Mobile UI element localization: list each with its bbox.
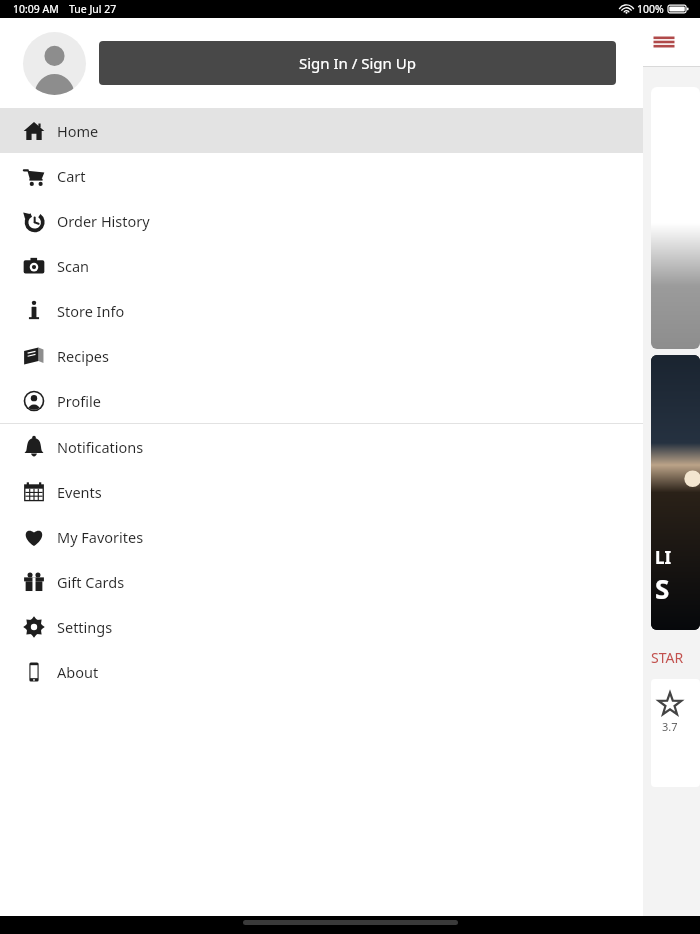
- staticText: Settings: [57, 617, 113, 637]
- staticText: Store Info: [57, 301, 125, 321]
- button[interactable]: Order History: [0, 198, 643, 243]
- staticText: Scan: [57, 256, 90, 276]
- staticText: Cart: [57, 166, 86, 186]
- staticText: Gift Cards: [57, 572, 125, 592]
- button[interactable]: Recipes: [0, 333, 643, 378]
- staticText: S: [655, 571, 670, 606]
- button[interactable]: Scan: [0, 243, 643, 288]
- staticText: 100%: [637, 2, 664, 16]
- staticText: STAR: [651, 648, 684, 667]
- staticText: Events: [57, 482, 102, 502]
- staticText: Profile: [57, 391, 101, 411]
- button[interactable]: Gift Cards: [0, 559, 643, 604]
- staticText: LI: [655, 546, 672, 569]
- button[interactable]: Profile: [0, 378, 643, 423]
- button[interactable]: My Favorites: [0, 514, 643, 559]
- button[interactable]: About: [0, 649, 643, 694]
- button[interactable]: Home: [0, 108, 643, 153]
- staticText: Tue Jul 27: [69, 2, 117, 16]
- button[interactable]: Sign In / Sign Up: [99, 41, 616, 85]
- button[interactable]: Settings: [0, 604, 643, 649]
- staticText: My Favorites: [57, 527, 144, 547]
- staticText: Recipes: [57, 346, 109, 366]
- staticText: 3.7: [662, 719, 678, 734]
- staticText: Notifications: [57, 437, 144, 457]
- button[interactable]: Notifications: [0, 424, 643, 469]
- staticText: Sign In / Sign Up: [299, 53, 416, 73]
- staticText: Order History: [57, 211, 150, 231]
- button[interactable]: Events: [0, 469, 643, 514]
- button[interactable]: Store Info: [0, 288, 643, 333]
- button[interactable]: Open navigation menu: [649, 27, 679, 57]
- staticText: About: [57, 662, 99, 682]
- button[interactable]: Cart: [0, 153, 643, 198]
- staticText: 10:09 AM: [13, 2, 59, 16]
- staticText: Home: [57, 121, 99, 141]
